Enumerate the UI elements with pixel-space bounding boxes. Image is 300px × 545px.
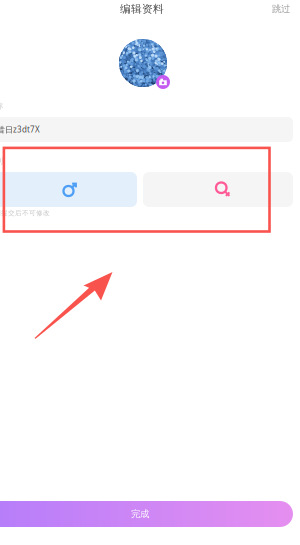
staticText: 昔日z3dt7X	[0, 124, 40, 135]
button[interactable]: 昔日z3dt7X	[0, 117, 293, 142]
staticText: 性别提交后不可修改	[0, 209, 50, 217]
staticText: 完成	[131, 508, 149, 520]
button[interactable]: 女	[143, 172, 293, 207]
button[interactable]: 跳过	[250, 2, 290, 16]
staticText: 性别	[0, 156, 3, 166]
button[interactable]: 完成	[0, 501, 293, 527]
staticText: 跳过	[272, 3, 290, 15]
staticText: 昵称	[0, 101, 3, 111]
button[interactable]: 男	[0, 172, 137, 207]
staticText: 编辑资料	[120, 2, 164, 15]
button[interactable]: 更换头像	[119, 39, 170, 89]
